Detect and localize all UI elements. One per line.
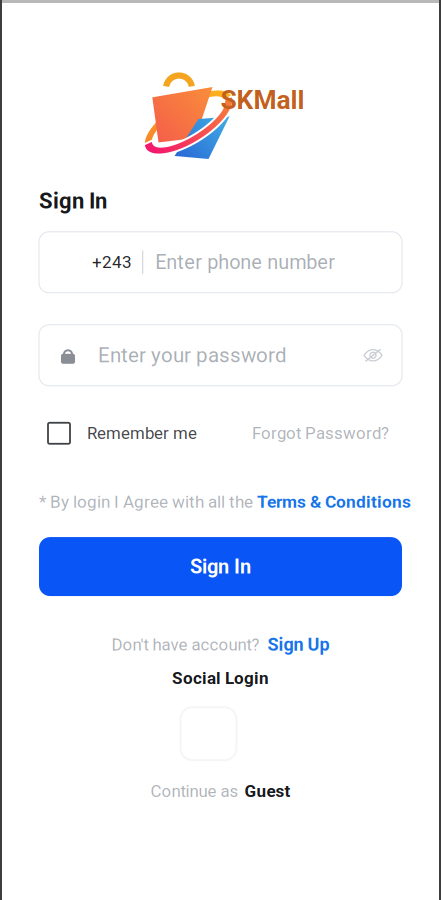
staticText: Enter your password (98, 343, 287, 367)
button[interactable]: Forgot Password? (252, 423, 389, 443)
button[interactable]: Sign Up (267, 634, 329, 655)
staticText: Sign Up (267, 634, 329, 655)
staticText: Terms & Conditions (257, 492, 411, 512)
staticText: SKMall (220, 84, 304, 115)
button[interactable]: Remember me (48, 423, 197, 444)
staticText: Guest (244, 781, 290, 801)
staticText: +243 (92, 252, 132, 272)
staticText: Remember me (87, 423, 197, 443)
staticText: Continue as (150, 781, 238, 801)
staticText: Forgot Password? (252, 423, 389, 443)
staticText: Enter phone number (155, 251, 335, 274)
button[interactable]: Terms & Conditions (257, 492, 411, 512)
staticText: Sign In (190, 555, 251, 578)
button[interactable]: Sign In (39, 537, 402, 596)
staticText: Social Login (172, 668, 269, 688)
staticText: Don't have account? (111, 635, 259, 654)
staticText: Sign In (39, 188, 107, 214)
button[interactable]: Continue as (150, 781, 290, 801)
staticText: * By login I Agree with all the (39, 492, 257, 512)
